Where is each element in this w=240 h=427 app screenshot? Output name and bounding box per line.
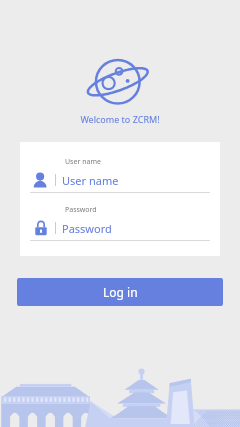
staticText: Password [62,221,112,236]
staticText: Welcome to ZCRM! [80,113,160,125]
button[interactable]: Password [30,205,210,241]
staticText: Password [65,205,97,215]
button[interactable]: Log in [17,278,223,306]
button[interactable]: User name [30,157,210,193]
other: User name [30,170,52,190]
other: Password [30,218,52,238]
staticText: User name [62,173,119,188]
staticText: User name [65,157,101,167]
staticText: Log in [103,284,138,300]
